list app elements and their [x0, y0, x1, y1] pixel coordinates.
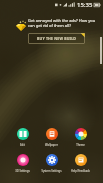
button[interactable]: Edit: [8, 128, 37, 147]
button[interactable]: System Settings: [37, 154, 66, 173]
button[interactable]: 3D Settings: [8, 154, 37, 173]
staticText: Get annoyed with the ads? How you can ge…: [28, 18, 96, 28]
staticText: Theme: [76, 143, 85, 147]
staticText: Wallpaper: [45, 143, 58, 147]
staticText: 3D Settings: [15, 169, 30, 173]
staticText: Help/Feedback: [71, 169, 90, 173]
staticText: Edit: [20, 143, 25, 147]
staticText: System Settings: [41, 169, 62, 173]
button[interactable]: Theme: [66, 128, 95, 147]
staticText: 15:35: [77, 1, 93, 9]
button[interactable]: Help/Feedback: [66, 154, 95, 173]
staticText: BUY THE NEW BUILD: [37, 36, 77, 41]
button[interactable]: BUY THE NEW BUILD: [28, 33, 85, 44]
button[interactable]: Wallpaper: [37, 128, 66, 147]
